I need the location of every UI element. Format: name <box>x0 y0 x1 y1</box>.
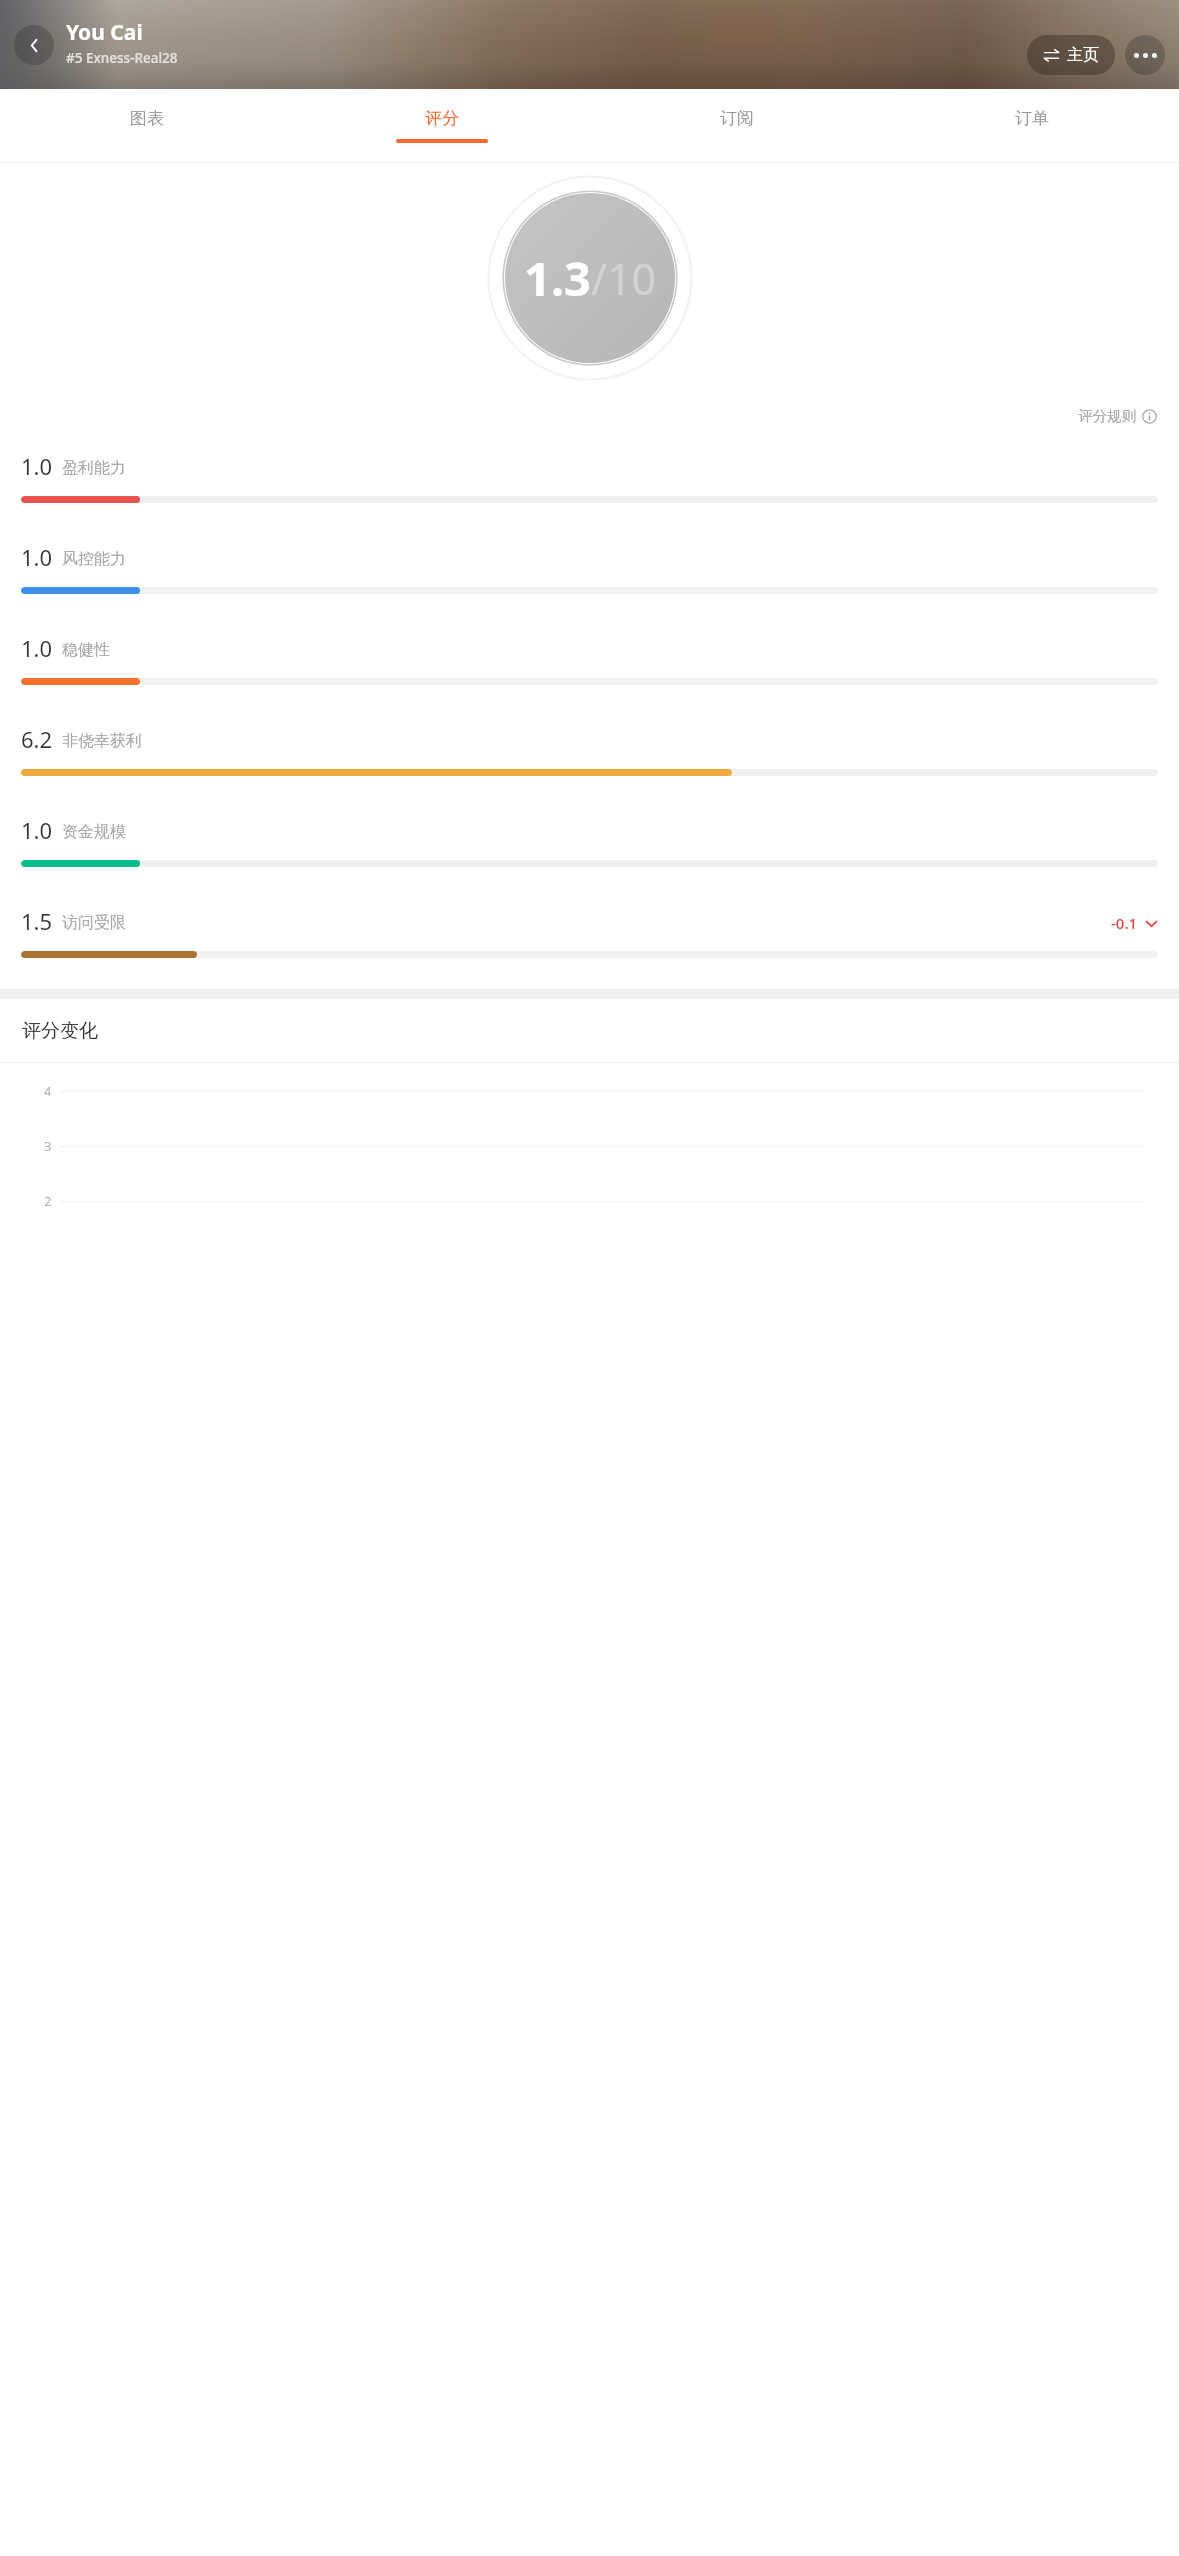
button[interactable]: 订单 <box>884 89 1179 162</box>
staticText: 1.3 <box>524 246 591 310</box>
staticText: 主页 <box>1067 45 1099 65</box>
staticText: 6.2 <box>21 724 53 754</box>
staticText: 1.0 <box>21 451 53 481</box>
staticText: You Cai <box>66 18 143 47</box>
button[interactable]: 1.5 <box>21 886 1158 977</box>
button[interactable]: 1.0 <box>21 431 1158 522</box>
staticText: 1.5 <box>21 906 53 936</box>
staticText: 1.0 <box>21 542 53 572</box>
staticText: 评分规则 <box>1078 407 1136 425</box>
staticText: 稳健性 <box>62 640 110 660</box>
button[interactable]: 1.0 <box>21 795 1158 886</box>
staticText: 订单 <box>1015 108 1049 129</box>
button[interactable]: 1.0 <box>21 522 1158 613</box>
button[interactable]: 评分规则 <box>1078 407 1157 425</box>
staticText: 评分 <box>425 108 459 129</box>
staticText: 非侥幸获利 <box>62 731 142 751</box>
staticText: 4 <box>44 1082 52 1100</box>
staticText: /10 <box>591 249 657 308</box>
staticText: 2 <box>44 1192 52 1210</box>
button[interactable]: More options <box>1125 35 1165 75</box>
button[interactable]: 订阅 <box>589 89 884 162</box>
button[interactable]: Back <box>14 25 54 65</box>
staticText: #5 Exness-Real28 <box>66 49 178 67</box>
staticText: 图表 <box>130 108 164 129</box>
staticText: 1.0 <box>21 815 53 845</box>
staticText: 3 <box>44 1137 52 1155</box>
staticText: 访问受限 <box>62 913 126 933</box>
button[interactable]: 评分 <box>294 89 589 162</box>
staticText: -0.1 <box>1111 913 1138 933</box>
staticText: 资金规模 <box>62 822 126 842</box>
staticText: 评分变化 <box>22 1019 98 1043</box>
button[interactable]: 1.0 <box>21 613 1158 704</box>
staticText: 订阅 <box>720 108 754 129</box>
staticText: 1.0 <box>21 633 53 663</box>
staticText: 风控能力 <box>62 549 126 569</box>
button[interactable]: 主页 <box>1027 35 1115 75</box>
button[interactable]: 图表 <box>0 89 294 162</box>
button[interactable]: 6.2 <box>21 704 1158 795</box>
staticText: 盈利能力 <box>62 458 126 478</box>
